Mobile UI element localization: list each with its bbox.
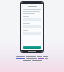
- button[interactable]: Submit: [23, 46, 41, 49]
